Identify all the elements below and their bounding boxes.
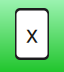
staticText: x	[26, 19, 38, 49]
